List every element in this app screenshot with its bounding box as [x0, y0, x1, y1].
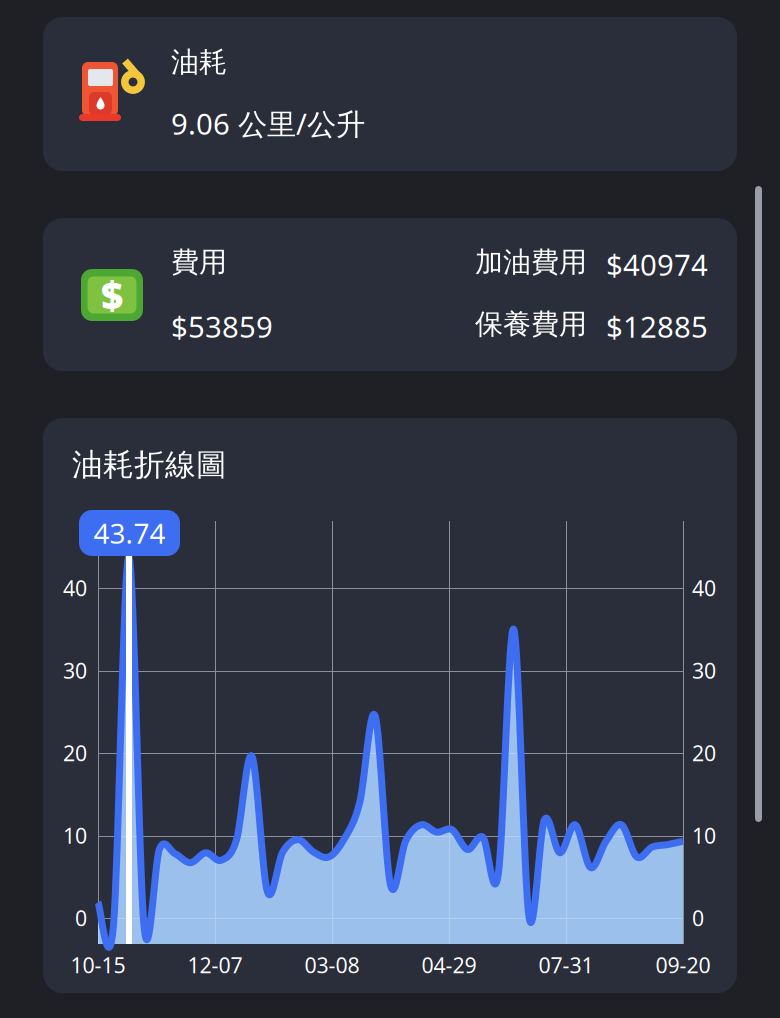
- staticText: 30: [692, 656, 716, 685]
- staticText: 03-08: [304, 951, 359, 979]
- staticText: 保養費用: [475, 307, 587, 341]
- staticText: 10-15: [70, 951, 125, 979]
- staticText: 9.06 公里/公升: [171, 104, 365, 143]
- button[interactable]: 油耗折線圖: [0, 0, 780, 1018]
- staticText: 油耗折線圖: [72, 446, 227, 484]
- staticText: 0: [692, 904, 704, 932]
- staticText: 07-31: [538, 951, 593, 979]
- staticText: 0: [75, 904, 87, 932]
- staticText: 油耗: [171, 45, 227, 79]
- staticText: 費用: [171, 245, 227, 279]
- staticText: 40: [63, 574, 87, 602]
- staticText: 加油費用: [475, 245, 587, 279]
- staticText: 04-29: [421, 951, 476, 979]
- staticText: $40974: [606, 245, 708, 284]
- staticText: 43.74: [93, 514, 165, 552]
- staticText: 10: [63, 821, 87, 850]
- staticText: $53859: [171, 307, 273, 346]
- staticText: 40: [692, 574, 716, 602]
- staticText: 30: [63, 656, 87, 685]
- staticText: 20: [63, 739, 87, 767]
- staticText: 09-20: [655, 951, 710, 979]
- staticText: 12-07: [187, 951, 242, 979]
- staticText: 20: [692, 739, 716, 767]
- button[interactable]: 油耗: [43, 17, 737, 171]
- staticText: $12885: [606, 307, 708, 346]
- button[interactable]: $: [43, 218, 737, 371]
- staticText: $: [101, 269, 123, 321]
- staticText: 10: [692, 821, 716, 850]
